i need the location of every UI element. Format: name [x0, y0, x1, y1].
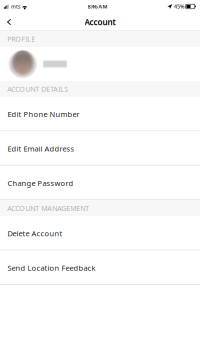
staticText: mts [11, 3, 20, 10]
staticText: Delete Account [8, 228, 63, 238]
staticText: Change Password [8, 178, 74, 188]
staticText: PROFILE [7, 34, 35, 44]
button[interactable]: Back [0, 15, 20, 29]
button[interactable]: Delete Account [0, 216, 200, 251]
staticText: 45% [174, 3, 184, 10]
button[interactable]: Change Password [0, 166, 200, 200]
staticText: Send Location Feedback [8, 263, 96, 273]
staticText: 8:46 AM [87, 3, 107, 10]
button[interactable]: Send Location Feedback [0, 251, 200, 285]
button[interactable]: Edit Phone Number [0, 97, 200, 131]
staticText: Account [84, 16, 115, 28]
staticText: Edit Phone Number [8, 109, 80, 119]
staticText: ACCOUNT MANAGEMENT [7, 203, 89, 213]
staticText: ACCOUNT DETAILS [7, 84, 68, 94]
button[interactable]: Profile [0, 47, 200, 81]
staticText: Edit Email Address [8, 143, 75, 154]
button[interactable]: Edit Email Address [0, 131, 200, 166]
